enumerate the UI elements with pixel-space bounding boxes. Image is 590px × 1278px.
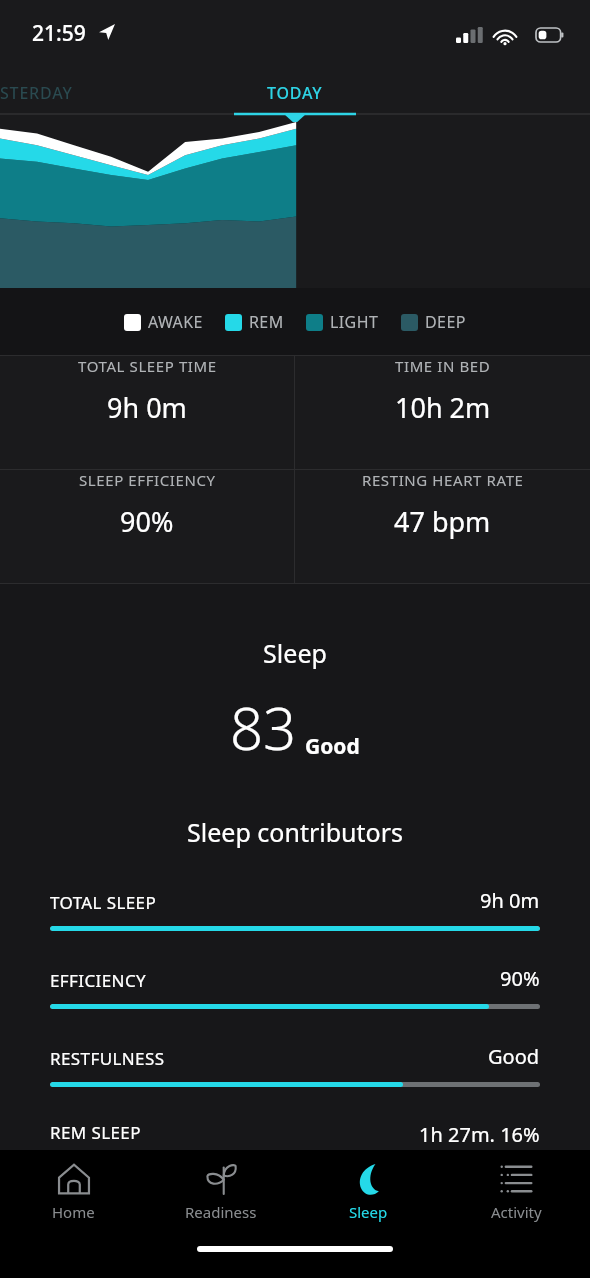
button[interactable]: EFFICIENCY <box>0 965 590 1043</box>
button[interactable]: STERDAY <box>0 82 73 104</box>
staticText: Sleep <box>0 636 590 670</box>
button[interactable]: Activity <box>442 1150 590 1222</box>
staticText: 1h 27m. 16% <box>419 1121 540 1148</box>
staticText: 90% <box>500 965 540 992</box>
staticText: 83 <box>230 688 297 767</box>
button[interactable]: REM SLEEP <box>50 1121 540 1148</box>
staticText: 47 bpm <box>394 503 491 540</box>
staticText: Activity <box>491 1202 542 1222</box>
staticText: TIME IN BED <box>395 356 491 376</box>
button[interactable]: RESTFULNESS <box>0 1043 590 1121</box>
staticText: TOTAL SLEEP <box>50 891 157 914</box>
button[interactable]: Readiness <box>147 1150 294 1222</box>
staticText: RESTING HEART RATE <box>362 470 524 490</box>
staticText: 21:59 <box>32 19 86 48</box>
button[interactable]: TOTAL SLEEP TIME <box>0 356 294 426</box>
staticText: 9h 0m <box>480 887 540 914</box>
staticText: REM SLEEP <box>50 1121 141 1144</box>
staticText: RESTFULNESS <box>50 1047 165 1070</box>
staticText: 10h 2m <box>395 389 491 426</box>
staticText: Good <box>305 732 360 761</box>
staticText: TOTAL SLEEP TIME <box>78 356 217 376</box>
staticText: Sleep <box>349 1202 388 1222</box>
button[interactable]: Sleep <box>294 1150 442 1222</box>
button[interactable]: RESTING HEART RATE <box>295 470 590 540</box>
button[interactable]: SLEEP EFFICIENCY <box>0 470 294 540</box>
button[interactable]: REM <box>225 311 284 333</box>
staticText: REM <box>249 311 284 333</box>
staticText: TODAY <box>267 82 323 104</box>
button[interactable]: LIGHT <box>306 311 379 333</box>
staticText: AWAKE <box>148 311 203 333</box>
staticText: Sleep contributors <box>0 815 590 849</box>
button[interactable]: AWAKE <box>124 311 203 333</box>
staticText: LIGHT <box>330 311 379 333</box>
button[interactable]: Home <box>0 1150 147 1222</box>
staticText: EFFICIENCY <box>50 969 147 992</box>
staticText: Readiness <box>185 1202 257 1222</box>
staticText: 9h 0m <box>107 389 187 426</box>
staticText: 90% <box>120 503 174 540</box>
button[interactable]: TIME IN BED <box>295 356 590 426</box>
button[interactable]: TODAY <box>267 82 323 104</box>
staticText: SLEEP EFFICIENCY <box>79 470 216 490</box>
button[interactable]: DEEP <box>401 311 466 333</box>
staticText: DEEP <box>425 311 466 333</box>
staticText: Good <box>488 1043 540 1070</box>
staticText: Home <box>52 1202 95 1222</box>
button[interactable]: TOTAL SLEEP <box>0 887 590 965</box>
